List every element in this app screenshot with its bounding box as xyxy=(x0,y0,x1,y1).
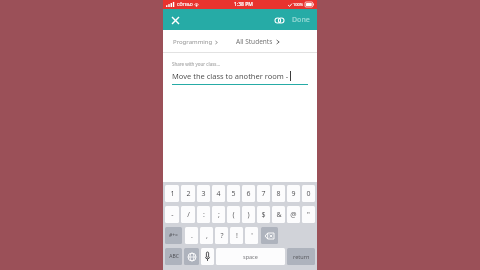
button[interactable]: 0 xyxy=(302,185,315,202)
button[interactable]: / xyxy=(181,206,195,223)
button[interactable]: Programming xyxy=(171,34,220,50)
staticText: 100% xyxy=(293,2,304,7)
staticText: & xyxy=(276,210,282,220)
button[interactable]: : xyxy=(197,206,210,223)
button[interactable]: ; xyxy=(212,206,225,223)
staticText: space xyxy=(243,253,258,260)
button[interactable]: ) xyxy=(242,206,255,223)
button[interactable]: $ xyxy=(257,206,270,223)
button[interactable]: 2 xyxy=(181,185,195,202)
button[interactable]: #+= xyxy=(165,227,182,244)
staticText: 7 xyxy=(261,189,266,199)
staticText: return xyxy=(293,253,310,260)
staticText: 2 xyxy=(186,189,191,199)
staticText: ! xyxy=(236,231,238,241)
button[interactable]: Backspace xyxy=(261,227,278,244)
staticText: All Students xyxy=(236,37,273,46)
button[interactable]: 4 xyxy=(212,185,225,202)
button[interactable]: 8 xyxy=(272,185,285,202)
button[interactable]: 3 xyxy=(197,185,210,202)
button[interactable]: 5 xyxy=(227,185,240,202)
button[interactable]: Close xyxy=(168,13,182,27)
button[interactable]: 1 xyxy=(165,185,179,202)
button[interactable]: " xyxy=(302,206,315,223)
staticText: , xyxy=(206,231,208,241)
staticText: 8 xyxy=(276,189,281,199)
button[interactable]: Done xyxy=(289,12,313,28)
staticText: - xyxy=(171,210,174,220)
button[interactable]: , xyxy=(200,227,213,244)
staticText: 6 xyxy=(246,189,251,199)
staticText: ? xyxy=(220,231,224,241)
button[interactable]: All Students xyxy=(234,33,282,50)
staticText: 5 xyxy=(231,189,236,199)
staticText: Programming xyxy=(173,38,213,46)
button[interactable]: Attach link xyxy=(272,13,287,28)
button[interactable]: ? xyxy=(215,227,228,244)
staticText: ; xyxy=(218,210,220,220)
button[interactable]: @ xyxy=(287,206,300,223)
button[interactable]: Voice input xyxy=(201,248,214,265)
button[interactable]: Change language xyxy=(184,248,199,265)
staticText: ( xyxy=(232,210,235,220)
button[interactable]: return xyxy=(287,248,315,265)
button[interactable]: ! xyxy=(230,227,243,244)
button[interactable]: 6 xyxy=(242,185,255,202)
button[interactable]: ' xyxy=(245,227,258,244)
staticText: . xyxy=(191,231,193,241)
staticText: 1:38 PM xyxy=(234,1,253,8)
staticText: 0 xyxy=(306,189,311,199)
staticText: Done xyxy=(292,15,310,25)
staticText: 9 xyxy=(291,189,296,199)
staticText: / xyxy=(187,210,190,220)
staticText: ' xyxy=(251,231,253,241)
staticText: @ xyxy=(290,210,297,220)
staticText: $ xyxy=(261,210,266,220)
button[interactable]: space xyxy=(216,248,285,265)
staticText: ) xyxy=(247,210,250,220)
staticText: ABC xyxy=(169,253,179,260)
staticText: 1 xyxy=(170,189,175,199)
button[interactable]: . xyxy=(185,227,198,244)
staticText: Move the class to another room - xyxy=(172,71,289,81)
staticText: Share with your class... xyxy=(172,61,221,67)
button[interactable]: 7 xyxy=(257,185,270,202)
button[interactable]: - xyxy=(165,206,179,223)
staticText: #+= xyxy=(169,232,178,239)
button[interactable]: ABC xyxy=(165,248,182,265)
staticText: : xyxy=(203,210,205,220)
staticText: " xyxy=(307,210,310,220)
staticText: 3 xyxy=(201,189,206,199)
button[interactable]: 9 xyxy=(287,185,300,202)
staticText: CÔTE&D xyxy=(177,2,193,7)
button[interactable]: ( xyxy=(227,206,240,223)
button[interactable]: & xyxy=(272,206,285,223)
staticText: 4 xyxy=(216,189,221,199)
